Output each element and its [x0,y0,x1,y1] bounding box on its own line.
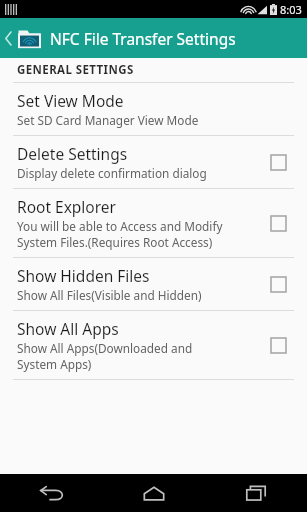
button[interactable]: Root Explorer checkbox [263,208,293,238]
staticText: System Apps) [17,356,92,372]
staticText: System Files.(Requires Root Access) [17,234,213,250]
staticText: NFC File Transfer Settings [50,28,236,49]
staticText: Show All Apps [17,318,119,339]
button[interactable]: Home [103,474,205,512]
button[interactable]: Delete Settings [0,136,307,188]
button[interactable]: App icon [14,23,44,53]
staticText: GENERAL SETTINGS [17,62,134,78]
staticText: Show Hidden Files [17,265,150,286]
button[interactable]: Root Explorer [0,189,307,257]
staticText: You will be able to Access and Modify [17,218,223,234]
staticText: Display delete confirmation dialog [17,165,207,181]
button[interactable]: Navigate up [2,18,14,58]
button[interactable]: Back [0,474,103,512]
button[interactable]: Show All Apps checkbox [263,330,293,360]
button[interactable]: Show All Apps [0,311,307,379]
staticText: Root Explorer [17,196,116,217]
button[interactable]: Recent apps [205,474,307,512]
staticText: Show All Files(Visible and Hidden) [17,287,202,303]
staticText: Set SD Card Manager View Mode [17,112,199,128]
staticText: 8:03 [280,2,302,17]
staticText: Set View Mode [17,90,124,111]
button[interactable]: Set View Mode [0,83,307,135]
staticText: Delete Settings [17,143,128,164]
button[interactable]: Show Hidden Files checkbox [263,269,293,299]
staticText: Show All Apps(Downloaded and [17,340,193,356]
button[interactable]: Show Hidden Files [0,258,307,310]
button[interactable]: Delete Settings checkbox [263,147,293,177]
